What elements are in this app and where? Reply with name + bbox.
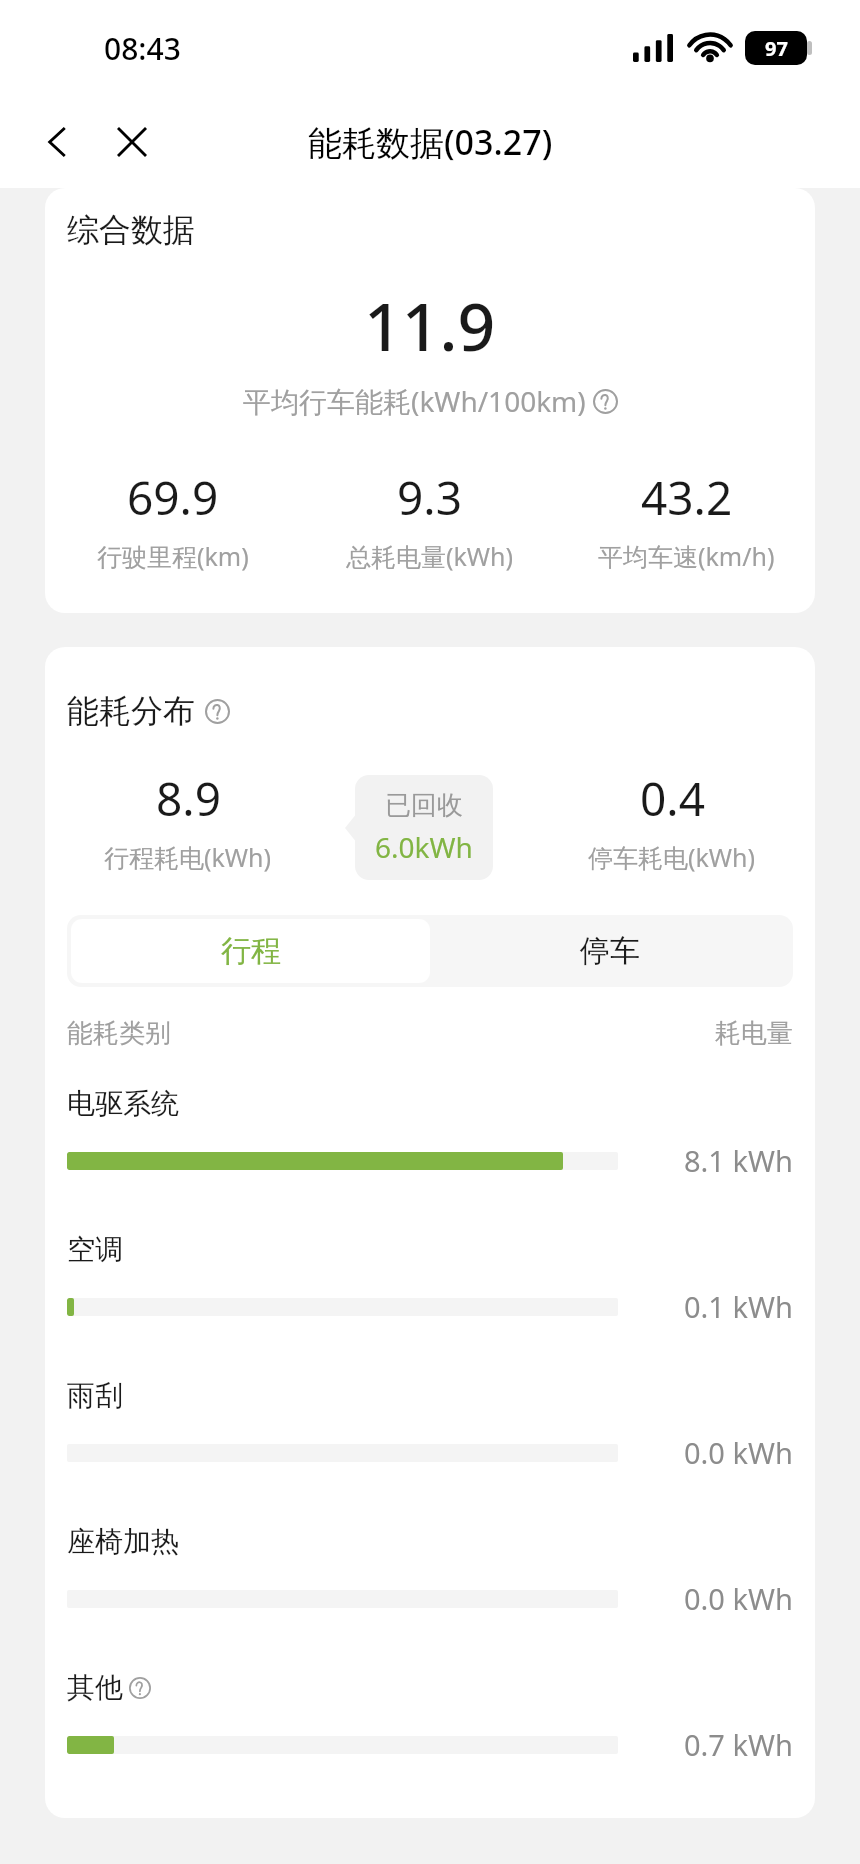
staticText: 能耗数据(03.27) bbox=[308, 119, 553, 165]
staticText: 11.9 bbox=[364, 280, 496, 370]
staticText: 总耗电量(kWh) bbox=[346, 539, 514, 573]
staticText: 平均车速(km/h) bbox=[598, 539, 775, 573]
staticText: 停车耗电(kWh) bbox=[588, 840, 756, 874]
staticText: 8.9 bbox=[156, 767, 221, 830]
staticText: 综合数据 bbox=[67, 210, 195, 250]
staticText: 0.0 kWh bbox=[684, 1433, 793, 1472]
staticText: 座椅加热 bbox=[67, 1524, 179, 1559]
staticText: 行程 bbox=[221, 932, 281, 970]
staticText: 雨刮 bbox=[67, 1378, 123, 1413]
button[interactable]: Back bbox=[30, 114, 86, 170]
staticText: 0.0 kWh bbox=[684, 1579, 793, 1618]
staticText: 08:43 bbox=[104, 28, 181, 69]
button[interactable]: Close bbox=[104, 114, 160, 170]
staticText: 0.7 kWh bbox=[684, 1725, 793, 1764]
staticText: 43.2 bbox=[641, 466, 733, 529]
staticText: 行驶里程(km) bbox=[97, 539, 249, 573]
staticText: 97 bbox=[765, 35, 788, 62]
staticText: 9.3 bbox=[397, 466, 462, 529]
staticText: 平均行车能耗(kWh/100km) bbox=[243, 382, 586, 420]
staticText: 8.1 kWh bbox=[684, 1141, 793, 1180]
staticText: 其他 bbox=[67, 1670, 123, 1705]
staticText: 电驱系统 bbox=[67, 1086, 179, 1121]
staticText: 能耗分布 bbox=[67, 691, 195, 731]
button[interactable]: 停车 bbox=[430, 919, 789, 983]
staticText: 69.9 bbox=[127, 466, 219, 529]
staticText: 耗电量 bbox=[715, 1017, 793, 1050]
staticText: 空调 bbox=[67, 1232, 123, 1267]
staticText: 6.0kWh bbox=[375, 828, 473, 866]
staticText: 行程耗电(kWh) bbox=[104, 840, 272, 874]
button[interactable]: 行程 bbox=[71, 919, 430, 983]
staticText: 0.1 kWh bbox=[684, 1287, 793, 1326]
staticText: 已回收 bbox=[385, 789, 463, 822]
staticText: 0.4 bbox=[640, 767, 705, 830]
staticText: 能耗类别 bbox=[67, 1017, 171, 1050]
staticText: 停车 bbox=[580, 932, 640, 970]
